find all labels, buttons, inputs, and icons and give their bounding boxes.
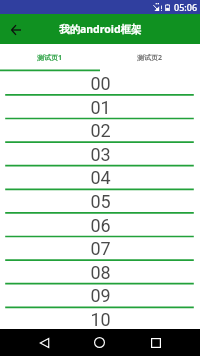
staticText: 测试页1	[37, 53, 63, 63]
staticText: 08	[90, 262, 111, 283]
button[interactable]: 测试页1	[0, 44, 100, 69]
staticText: 07	[90, 238, 111, 259]
button[interactable]: 03	[0, 142, 200, 166]
button[interactable]: 10	[0, 307, 200, 331]
button[interactable]: 00	[0, 71, 200, 95]
button[interactable]: 08	[0, 260, 200, 284]
staticText: 测试页2	[137, 53, 163, 63]
button[interactable]: 07	[0, 236, 200, 260]
staticText: 01	[90, 97, 111, 118]
button[interactable]: 测试页2	[100, 44, 200, 69]
button[interactable]: Back	[3, 17, 28, 42]
button[interactable]: 09	[0, 283, 200, 307]
staticText: 05:06	[174, 1, 198, 13]
button[interactable]: 01	[0, 95, 200, 119]
button[interactable]: Home	[86, 329, 113, 356]
button[interactable]: 06	[0, 213, 200, 237]
staticText: 我的android框架	[59, 22, 142, 36]
staticText: 05	[90, 191, 111, 212]
button[interactable]: 05	[0, 189, 200, 213]
staticText: 10	[90, 309, 111, 330]
button[interactable]: 04	[0, 165, 200, 189]
button[interactable]: Recents	[142, 329, 169, 356]
staticText: 09	[90, 285, 111, 306]
staticText: 03	[90, 144, 111, 165]
staticText: 06	[90, 215, 111, 236]
staticText: 02	[90, 120, 111, 141]
staticText: 00	[90, 73, 111, 94]
button[interactable]: Back	[31, 329, 58, 356]
staticText: 04	[90, 167, 111, 188]
button[interactable]: 02	[0, 118, 200, 142]
